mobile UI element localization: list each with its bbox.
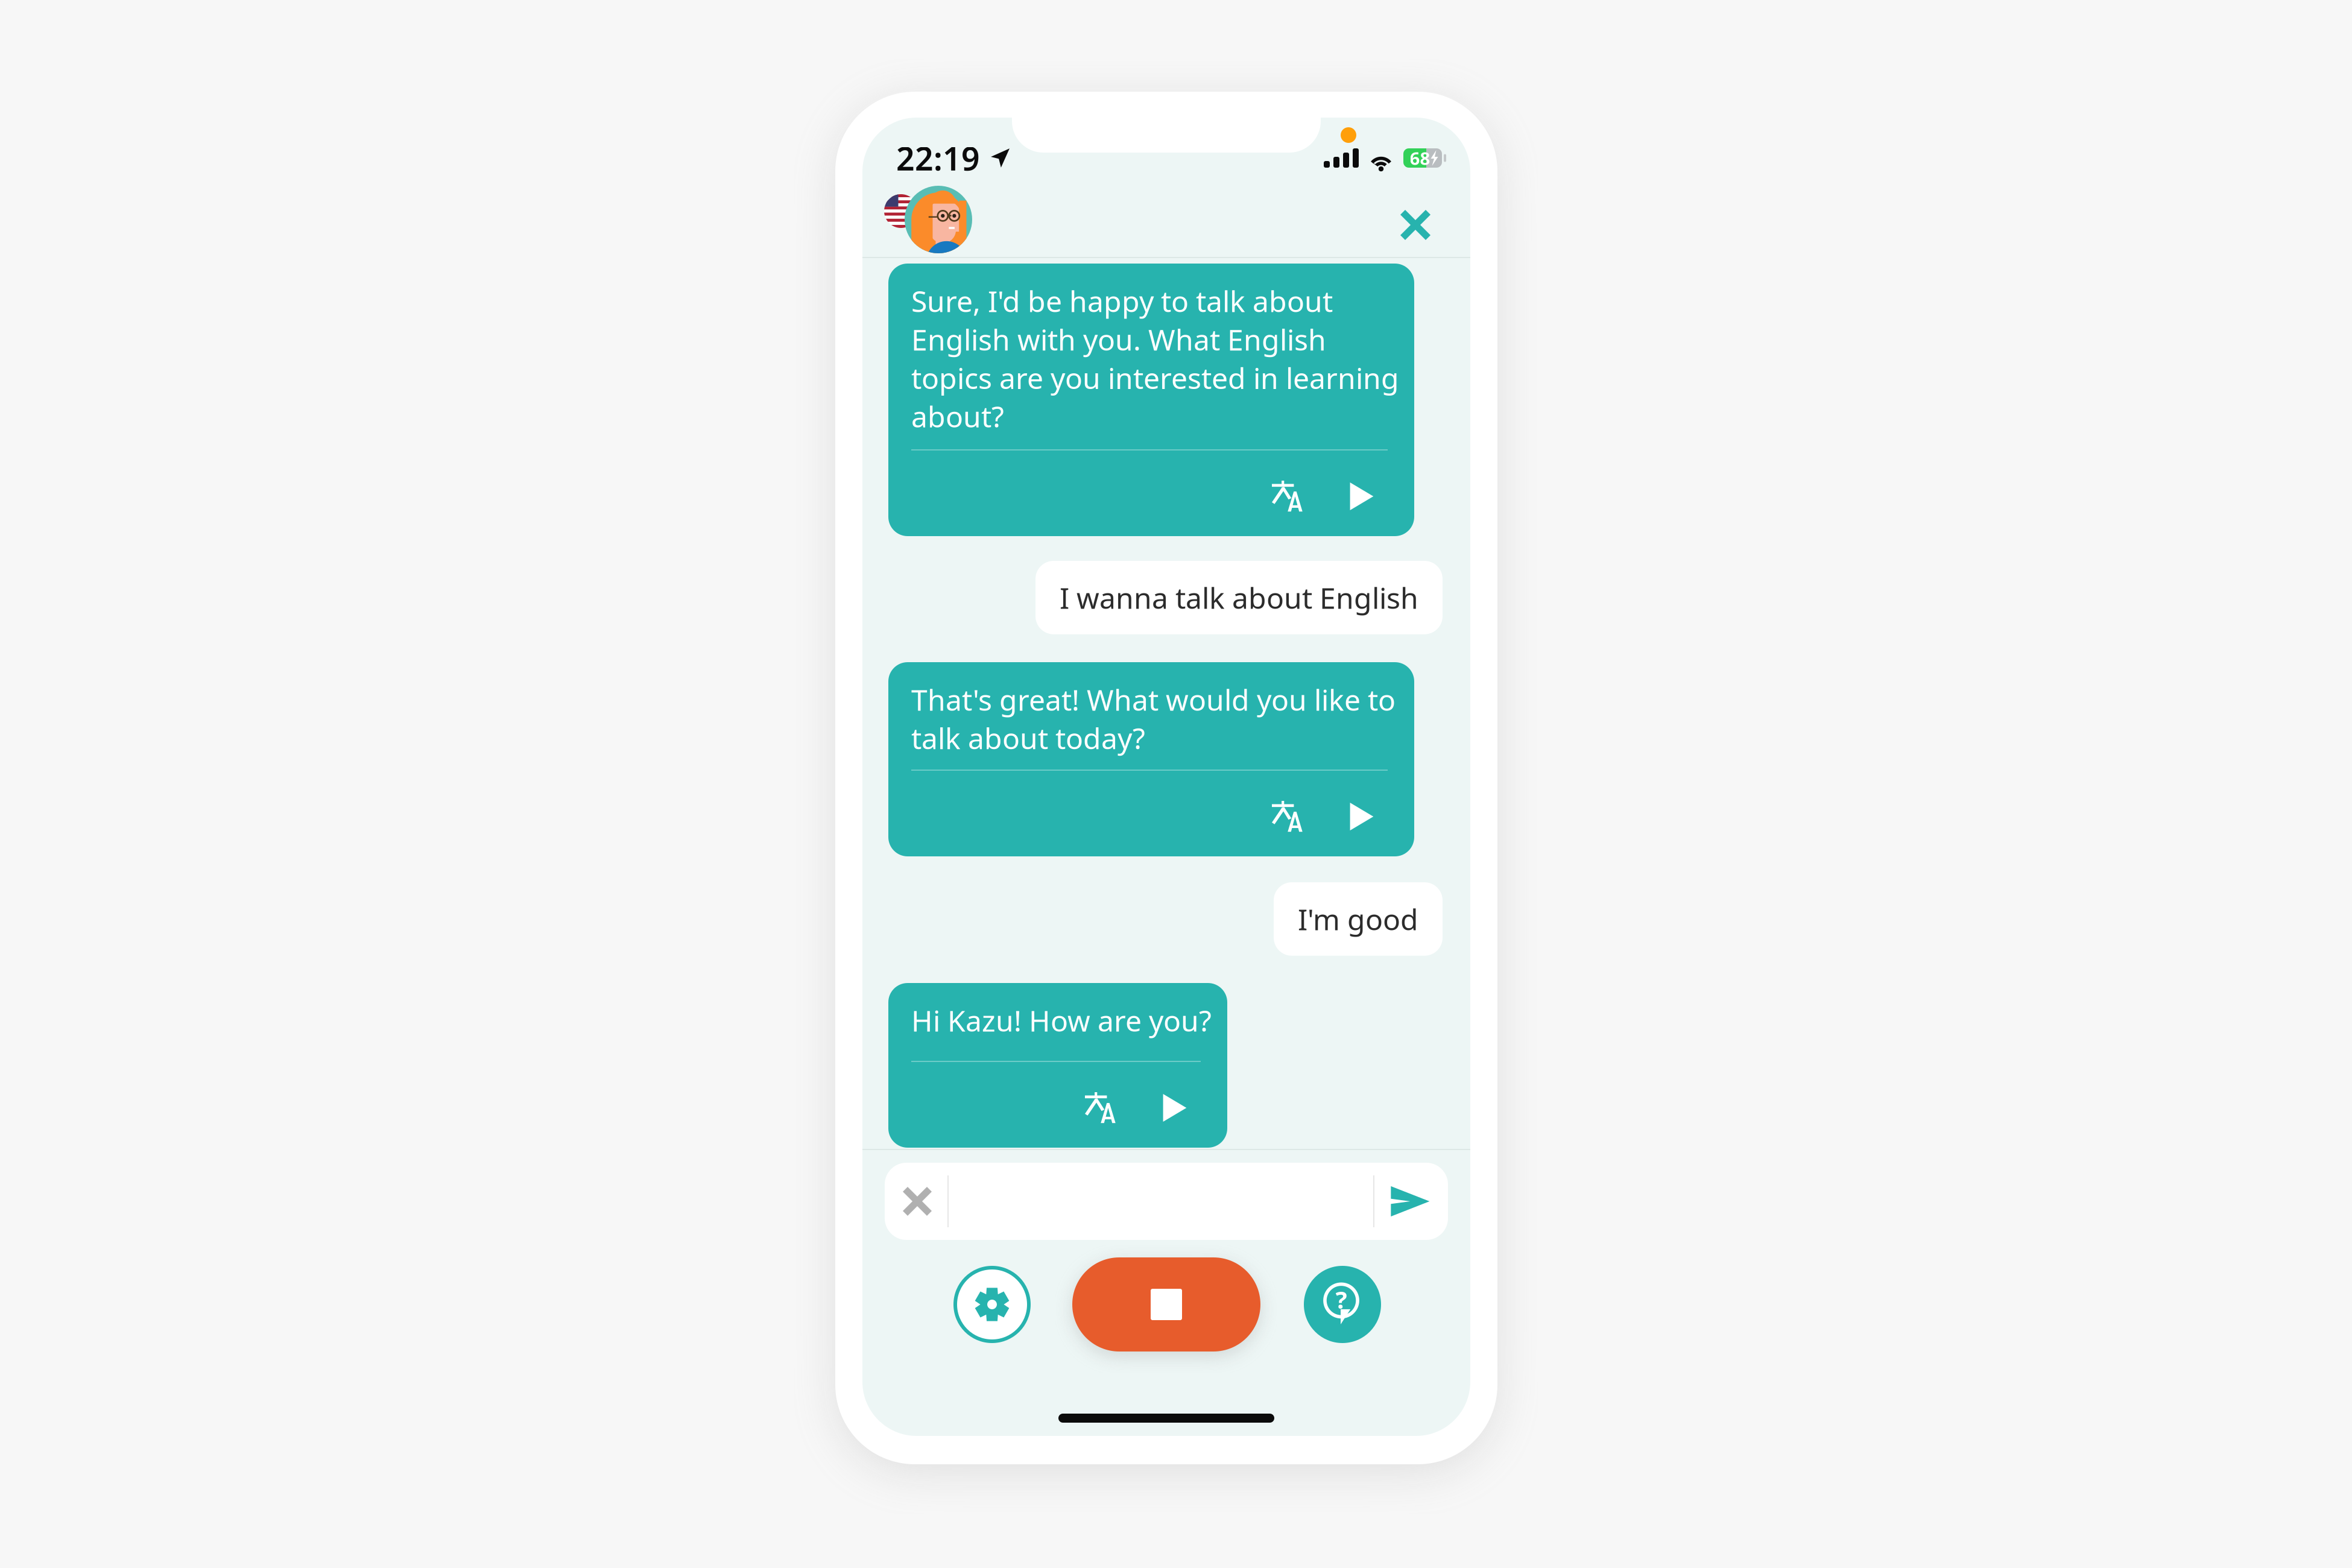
staticText: I'm good — [1298, 900, 1418, 938]
button[interactable]: Close conversation — [1382, 188, 1470, 254]
button[interactable]: Send message — [1374, 1163, 1448, 1239]
button[interactable]: Clear text — [885, 1164, 947, 1239]
button[interactable]: Help — [1304, 1266, 1381, 1343]
staticText: Sure, I'd be happy to talk about English… — [911, 282, 1399, 435]
staticText: 22:19 — [896, 137, 980, 179]
button[interactable]: Play audio — [1335, 785, 1388, 848]
button[interactable]: Settings — [955, 1268, 1029, 1341]
staticText: ? — [1336, 1283, 1347, 1315]
button[interactable]: Translate — [1259, 465, 1317, 528]
button[interactable]: Translate — [1259, 785, 1317, 848]
staticText: I wanna talk about English — [1060, 578, 1418, 617]
staticText: That's great! What would you like to tal… — [911, 680, 1396, 757]
button[interactable]: Tutor profile — [862, 186, 972, 257]
button[interactable]: Translate — [1072, 1076, 1130, 1139]
staticText: 68 — [1410, 146, 1430, 170]
staticText: Hi Kazu! How are you? — [911, 1001, 1212, 1040]
button[interactable]: Play audio — [1335, 465, 1388, 528]
button[interactable]: Play audio — [1148, 1076, 1201, 1139]
button[interactable]: Stop recording — [1072, 1257, 1260, 1351]
